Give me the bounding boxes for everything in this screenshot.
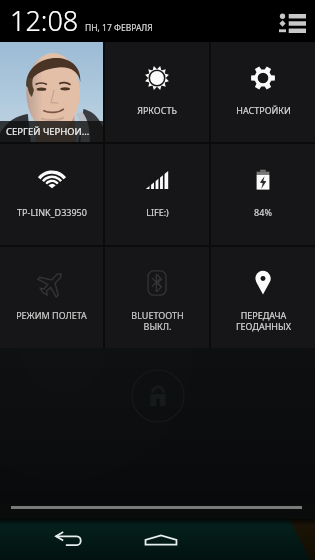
staticText: ЯРКОСТЬ [137,104,177,116]
staticText: ПЕРЕДАЧА ГЕОДАННЫХ [236,309,291,333]
button[interactable]: РЕЖИМ ПОЛЕТА [0,247,103,348]
button[interactable]: Brightness slider [0,504,315,519]
button[interactable]: BLUETOOTH ВЫКЛ. [105,247,209,348]
button[interactable]: ЯРКОСТЬ [105,42,209,142]
staticText: НАСТРОЙКИ [236,104,291,116]
staticText: LIFE:) [146,206,169,218]
staticText: BLUETOOTH ВЫКЛ. [131,309,184,333]
button[interactable]: ПЕРЕДАЧА ГЕОДАННЫХ [211,247,315,348]
button[interactable]: 84% [211,144,315,245]
button[interactable]: Unlock [131,369,185,423]
button[interactable]: НАСТРОЙКИ [211,42,315,142]
button[interactable]: СЕРГЕЙ ЧЕРНОИ… [0,42,103,142]
button[interactable]: TP-LINK_D33950 [0,144,103,245]
button[interactable]: Back [0,519,105,560]
button[interactable]: Home [105,519,210,560]
staticText: TP-LINK_D33950 [17,206,87,218]
button[interactable]: Notifications list [277,10,307,36]
staticText: 84% [254,206,272,218]
staticText: СЕРГЕЙ ЧЕРНОИ… [6,125,90,138]
button[interactable]: LIFE:) [105,144,209,245]
staticText: РЕЖИМ ПОЛЕТА [16,309,87,321]
staticText: ПН, 17 ФЕВРАЛЯ [85,22,153,34]
staticText: 12:08 [10,2,79,39]
